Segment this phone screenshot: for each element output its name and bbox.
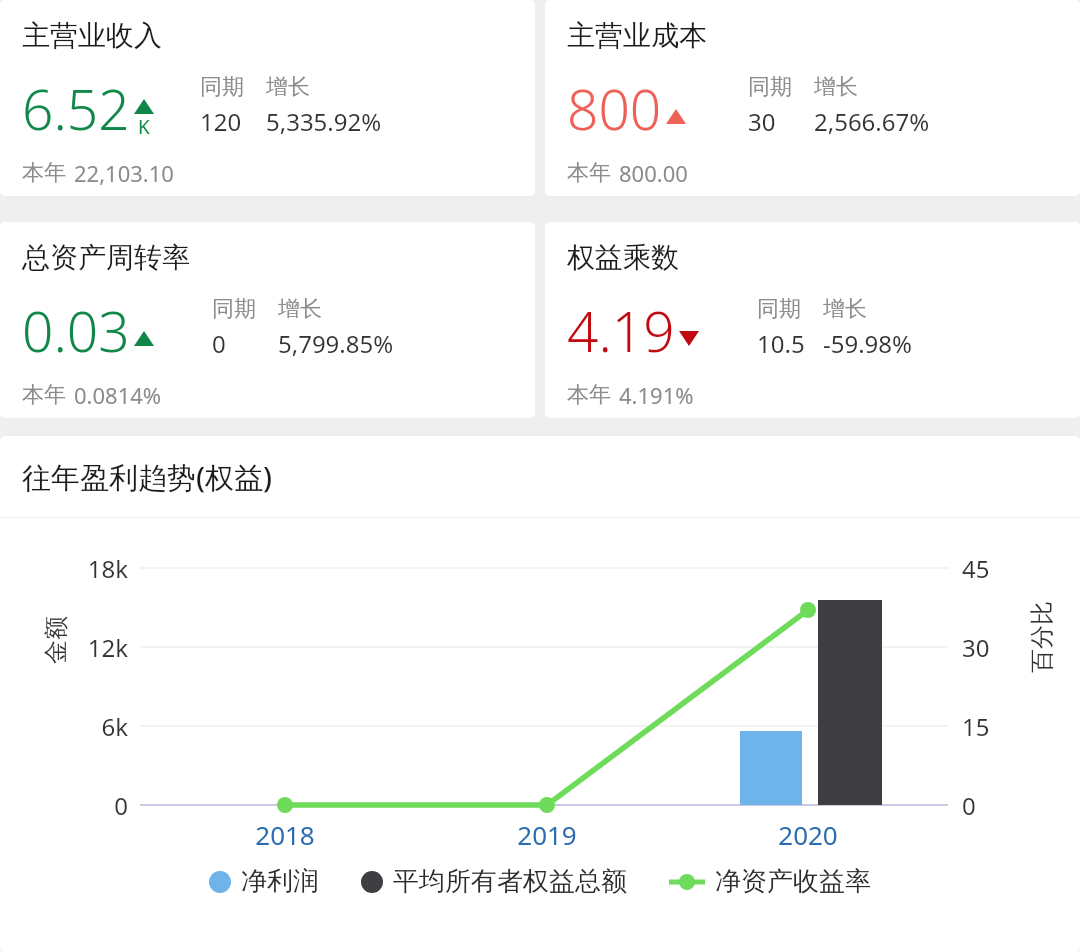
staticText: 本年 [22,159,66,187]
staticText: 主营业成本 [567,18,707,53]
staticText: 30 [748,105,814,138]
staticText: 120 [200,105,266,138]
staticText: 主营业收入 [22,18,162,53]
button[interactable]: 净利润 [209,865,319,898]
staticText: 800 [567,71,662,146]
staticText: 本年 [567,381,611,409]
staticText: 15 [962,710,1022,743]
staticText: 5,335.92% [266,105,382,138]
staticText: 同期 [748,73,814,101]
staticText: 18k [28,552,128,585]
staticText: 同期 [757,295,823,323]
staticText: 净资产收益率 [715,865,871,898]
button[interactable]: 权益乘数 [545,222,1080,418]
staticText: 百分比 [1027,601,1057,673]
staticText: 4.191% [619,380,694,410]
staticText: 30 [962,631,1022,664]
staticText: 2018 [225,817,345,852]
staticText: 2019 [487,817,607,852]
staticText: 2,566.67% [814,105,930,138]
staticText: 增长 [823,295,867,323]
staticText: 增长 [266,73,310,101]
staticText: K [138,114,150,140]
button[interactable]: 总资产周转率 [0,222,535,418]
button[interactable]: 净资产收益率 [669,865,871,898]
staticText: 平均所有者权益总额 [393,865,627,898]
staticText: 往年盈利趋势(权益) [22,457,273,497]
staticText: 12k [28,631,128,664]
staticText: 权益乘数 [567,240,679,275]
staticText: 45 [962,552,1022,585]
staticText: 增长 [278,295,322,323]
staticText: 同期 [212,295,278,323]
staticText: 本年 [567,159,611,187]
other: Increase [134,99,154,114]
staticText: 6k [28,710,128,743]
button[interactable]: 平均所有者权益总额 [361,865,627,898]
staticText: 800.00 [619,158,688,188]
staticText: 同期 [200,73,266,101]
button[interactable]: 主营业成本 [545,0,1080,196]
staticText: 22,103.10 [74,158,174,188]
other: Decrease [679,331,699,346]
button[interactable]: 主营业收入 [0,0,535,196]
staticText: 6.52 [22,71,130,146]
staticText: 净利润 [241,865,319,898]
other: Increase [666,109,686,124]
staticText: 2020 [748,817,868,852]
staticText: 5,799.85% [278,327,394,360]
staticText: 总资产周转率 [22,240,190,275]
staticText: -59.98% [823,327,913,360]
staticText: 本年 [22,381,66,409]
staticText: 0 [28,789,128,822]
staticText: 0 [212,327,278,360]
staticText: 10.5 [757,327,823,360]
staticText: 4.19 [567,293,675,368]
staticText: 0.0814% [74,380,162,410]
staticText: 增长 [814,73,858,101]
staticText: 0.03 [22,293,130,368]
staticText: 0 [962,789,1022,822]
other: Increase [134,331,154,346]
staticText: 金额 [41,616,71,664]
